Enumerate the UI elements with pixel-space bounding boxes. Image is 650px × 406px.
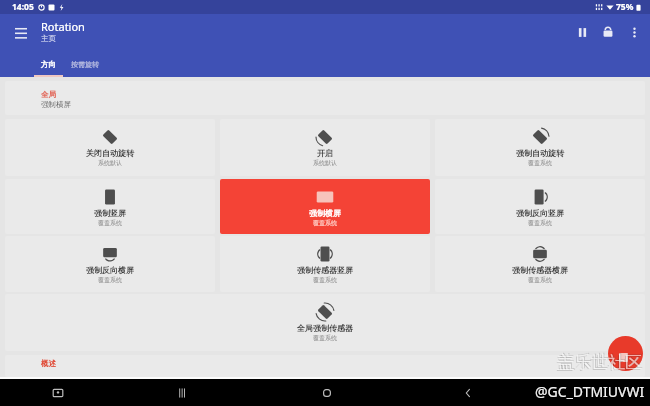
button[interactable]: 全局 xyxy=(5,81,645,115)
staticText: 覆盖系统 xyxy=(313,219,337,227)
staticText: 全局 xyxy=(41,90,56,99)
staticText: 14:05 xyxy=(12,1,34,13)
staticText: 覆盖系统 xyxy=(528,159,552,167)
staticText: 关闭自动旋转 xyxy=(86,148,134,158)
staticText: @GC_DTMIUVWI xyxy=(535,382,645,401)
button[interactable] xyxy=(5,236,215,292)
staticText: 强制横屏 xyxy=(41,100,71,109)
staticText: 覆盖系统 xyxy=(98,219,122,227)
button[interactable] xyxy=(220,119,430,176)
button[interactable] xyxy=(435,236,645,292)
staticText: 强制传感器横屏 xyxy=(512,265,568,275)
staticText: 强制竖屏 xyxy=(94,208,126,218)
button[interactable]: Recent apps xyxy=(168,379,195,406)
staticText: 覆盖系统 xyxy=(98,276,122,284)
button[interactable]: Pause xyxy=(569,19,595,45)
button[interactable]: 概述 xyxy=(5,355,645,377)
staticText: 开启 xyxy=(317,148,333,158)
button[interactable]: Add rotation rule xyxy=(608,336,643,371)
staticText: 按需旋转 xyxy=(71,60,99,69)
button[interactable]: Back xyxy=(454,379,481,406)
staticText: 覆盖系统 xyxy=(313,334,337,342)
staticText: 强制传感器竖屏 xyxy=(297,265,353,275)
staticText: 盖乐世社区 xyxy=(558,351,643,372)
staticText: 系统默认 xyxy=(98,159,122,167)
staticText: Rotation xyxy=(41,19,85,34)
button[interactable] xyxy=(5,119,215,176)
button[interactable]: More options xyxy=(621,19,647,45)
button[interactable]: 方向 xyxy=(34,53,63,77)
staticText: 系统默认 xyxy=(313,159,337,167)
button[interactable] xyxy=(5,294,645,351)
staticText: 强制横屏 xyxy=(309,208,341,218)
button[interactable]: Open navigation drawer xyxy=(9,21,33,45)
staticText: 盖乐世社区 xyxy=(556,353,641,374)
button[interactable] xyxy=(220,179,430,234)
staticText: 强制自动旋转 xyxy=(516,148,564,158)
button[interactable] xyxy=(435,119,645,176)
staticText: 75% xyxy=(616,1,634,13)
button[interactable] xyxy=(435,179,645,234)
button[interactable]: 按需旋转 xyxy=(69,53,100,77)
staticText: 概述 xyxy=(41,359,56,368)
staticText: 强制反向竖屏 xyxy=(516,208,564,218)
button[interactable]: Lock rotation xyxy=(595,19,621,45)
button[interactable]: Screenshot xyxy=(44,379,71,406)
button[interactable]: Home xyxy=(313,379,340,406)
staticText: 主页 xyxy=(41,34,56,43)
staticText: 方向 xyxy=(41,60,56,69)
staticText: 盖乐世社区 xyxy=(557,352,642,373)
staticText: 全局强制传感器 xyxy=(297,323,353,333)
staticText: 强制反向横屏 xyxy=(86,265,134,275)
staticText: 覆盖系统 xyxy=(528,276,552,284)
staticText: 覆盖系统 xyxy=(528,219,552,227)
button[interactable] xyxy=(5,179,215,234)
button[interactable] xyxy=(220,236,430,292)
staticText: 覆盖系统 xyxy=(313,276,337,284)
